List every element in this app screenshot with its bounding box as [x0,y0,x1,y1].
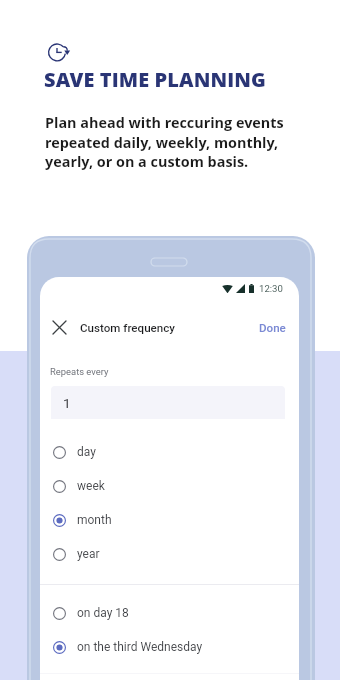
staticText: SAVE TIME PLANNING [44,66,267,93]
staticText: Done [259,321,286,335]
button[interactable]: 1 [51,386,285,419]
staticText: on the third Wednesday [77,640,203,654]
staticText: 1 [63,395,71,411]
button[interactable]: on day 18 [40,596,299,630]
button[interactable]: Done [254,315,291,341]
button[interactable]: year [40,537,299,571]
button[interactable]: day [40,435,299,469]
staticText: 12:30 [259,283,283,294]
staticText: Custom frequency [80,321,175,335]
staticText: on day 18 [77,606,129,620]
staticText: Plan ahead with reccuring events repeate… [45,113,297,171]
staticText: week [77,479,105,493]
staticText: year [77,547,100,561]
staticText: day [77,445,96,459]
button[interactable]: on the third Wednesday [40,630,299,664]
staticText: month [77,513,112,527]
staticText: Repeats every [50,366,109,377]
button[interactable]: week [40,469,299,503]
button[interactable]: Close [46,314,73,341]
button[interactable]: month [40,503,299,537]
